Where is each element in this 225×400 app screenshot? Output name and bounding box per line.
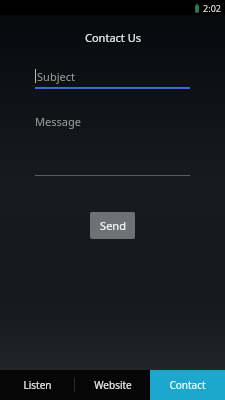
staticText: Contact Us [85, 30, 141, 45]
button[interactable]: Subject [35, 65, 190, 87]
staticText: Listen [23, 378, 52, 392]
button[interactable]: Send [90, 212, 135, 239]
staticText: 2:02 [203, 2, 221, 14]
button[interactable]: Website [75, 370, 150, 400]
staticText: Send [100, 218, 126, 233]
button[interactable]: Listen [0, 370, 74, 400]
staticText: Subject [37, 69, 75, 84]
staticText: Website [94, 378, 132, 392]
staticText: Contact [169, 378, 206, 392]
staticText: Message [35, 114, 81, 129]
button[interactable]: Contact [150, 370, 225, 400]
button[interactable]: Message [35, 111, 190, 176]
